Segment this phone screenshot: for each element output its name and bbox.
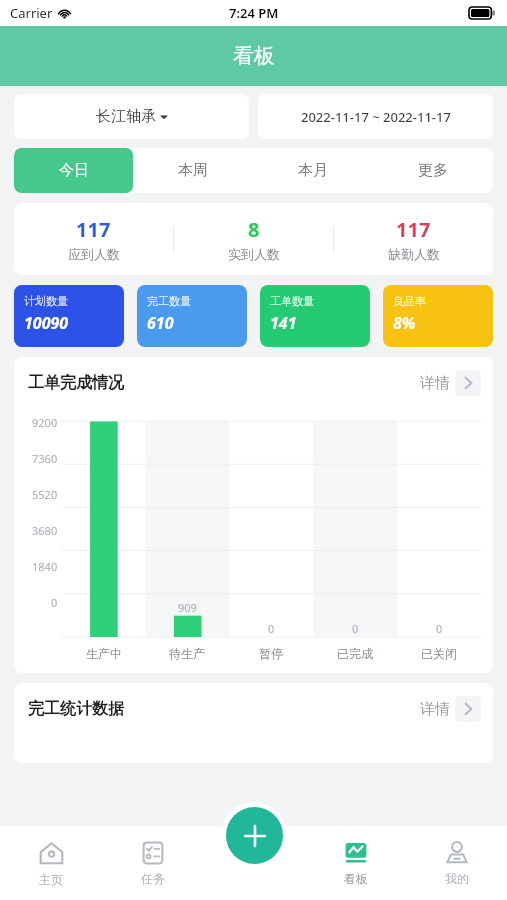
button[interactable]: 工单数量 xyxy=(260,285,370,347)
staticText: 0 xyxy=(436,621,443,636)
staticText: 任务 xyxy=(141,871,165,886)
button[interactable]: 本月 xyxy=(253,148,373,193)
staticText: 生产中 xyxy=(86,646,122,661)
staticText: 计划数量 xyxy=(24,294,68,308)
staticText: 5520 xyxy=(32,487,58,502)
button[interactable]: 任务 xyxy=(102,826,204,900)
staticText: 117 xyxy=(396,216,431,243)
staticText: 8% xyxy=(393,312,416,334)
staticText: 本周 xyxy=(178,161,208,180)
staticText: 10090 xyxy=(24,312,69,334)
staticText: Carrier xyxy=(10,4,53,22)
staticText: 长江轴承 xyxy=(96,107,156,126)
button[interactable]: 长江轴承 xyxy=(14,94,249,139)
staticText: 本月 xyxy=(298,161,328,180)
button[interactable]: 详情 xyxy=(420,370,481,396)
staticText: 良品率 xyxy=(393,294,426,308)
staticText: 详情 xyxy=(420,374,450,393)
staticText: 610 xyxy=(147,312,174,334)
button[interactable]: 我的 xyxy=(406,826,507,900)
staticText: 0 xyxy=(352,621,359,636)
staticText: 更多 xyxy=(418,161,448,180)
staticText: 我的 xyxy=(445,871,469,886)
staticText: 1840 xyxy=(32,559,58,574)
button[interactable]: 完工数量 xyxy=(137,285,247,347)
button[interactable]: 良品率 xyxy=(383,285,493,347)
button[interactable]: 117 xyxy=(14,216,173,262)
staticText: 909 xyxy=(178,600,197,615)
staticText: 暂停 xyxy=(259,646,283,661)
staticText: 9200 xyxy=(32,415,58,430)
staticText: 缺勤人数 xyxy=(388,246,440,262)
staticText: 已完成 xyxy=(337,646,373,661)
staticText: 141 xyxy=(270,312,297,334)
button[interactable]: 本周 xyxy=(133,148,253,193)
button[interactable]: Add xyxy=(226,807,283,864)
staticText: 7:24 PM xyxy=(229,4,279,22)
staticText: 7360 xyxy=(32,451,58,466)
button[interactable]: 8 xyxy=(174,216,333,262)
staticText: 3680 xyxy=(32,523,58,538)
staticText: 主页 xyxy=(39,872,63,887)
staticText: 今日 xyxy=(59,161,89,180)
button[interactable]: 看板 xyxy=(305,826,406,900)
staticText: 117 xyxy=(76,216,111,243)
staticText: 工单数量 xyxy=(270,294,314,308)
staticText: 完工统计数据 xyxy=(28,699,124,719)
staticText: 应到人数 xyxy=(68,246,120,262)
staticText: 看板 xyxy=(233,43,275,69)
staticText: 工单完成情况 xyxy=(28,373,124,393)
button[interactable]: 计划数量 xyxy=(14,285,124,347)
staticText: 已关闭 xyxy=(421,646,457,661)
button[interactable]: 主页 xyxy=(0,826,102,900)
staticText: 2022-11-17 ~ 2022-11-17 xyxy=(301,108,451,126)
button[interactable]: 今日 xyxy=(14,148,133,193)
staticText: 详情 xyxy=(420,700,450,719)
staticText: 8 xyxy=(248,216,260,243)
staticText: 实到人数 xyxy=(228,246,280,262)
staticText: 0 xyxy=(268,621,275,636)
staticText: 看板 xyxy=(344,871,368,886)
button[interactable]: 更多 xyxy=(373,148,493,193)
staticText: 待生产 xyxy=(169,646,205,661)
staticText: 0 xyxy=(51,595,58,610)
button[interactable]: 2022-11-17 ~ 2022-11-17 xyxy=(258,94,493,139)
button[interactable]: 117 xyxy=(334,216,493,262)
staticText: 完工数量 xyxy=(147,294,191,308)
button[interactable]: 详情 xyxy=(420,696,481,722)
